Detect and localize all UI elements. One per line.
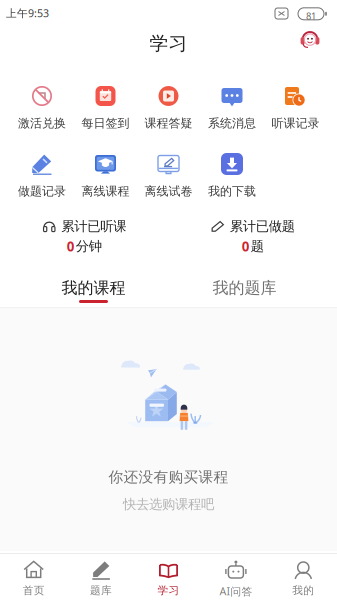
button[interactable]: 离线试卷 (135, 148, 201, 200)
button[interactable]: 课程答疑 (135, 80, 201, 132)
staticText: 离线课程 (81, 184, 129, 199)
button[interactable]: 首页 (0, 555, 67, 600)
button[interactable]: 我的下载 (199, 148, 265, 200)
button[interactable]: 我的题库 (184, 276, 304, 308)
staticText: 系统消息 (208, 116, 256, 131)
button[interactable]: 题库 (67, 555, 135, 600)
staticText: 我的题库 (212, 278, 276, 298)
staticText: 0 (67, 237, 75, 255)
button[interactable]: 离线课程 (72, 148, 138, 200)
staticText: 学习 (157, 584, 179, 597)
staticText: 我的 (292, 584, 314, 597)
staticText: 上午9:53 (6, 6, 49, 20)
staticText: 每日签到 (81, 116, 129, 131)
button[interactable]: 我的 (270, 555, 337, 600)
staticText: 课程答疑 (144, 116, 192, 131)
button[interactable]: 我的课程 (33, 276, 153, 308)
button[interactable]: 系统消息 (199, 80, 265, 132)
staticText: AI问答 (219, 584, 252, 598)
staticText: 0 (242, 237, 250, 255)
button[interactable]: 学习 (135, 555, 202, 600)
staticText: 你还没有购买课程 (108, 468, 228, 486)
staticText: 分钟 (76, 238, 102, 254)
staticText: 我的课程 (61, 278, 125, 298)
button[interactable]: AI问答 (202, 555, 270, 600)
staticText: 做题记录 (18, 184, 66, 199)
button[interactable]: 听课记录 (262, 80, 328, 132)
staticText: 题 (251, 238, 264, 254)
staticText: 快去选购课程吧 (123, 496, 214, 512)
button[interactable]: 激活兑换 (9, 80, 75, 132)
staticText: 累计已做题 (230, 218, 295, 234)
staticText: 首页 (23, 584, 45, 597)
button[interactable]: 做题记录 (9, 148, 75, 200)
staticText: 激活兑换 (18, 116, 66, 131)
staticText: 学习 (149, 32, 187, 55)
staticText: 累计已听课 (61, 218, 126, 234)
staticText: 离线试卷 (144, 184, 192, 199)
button[interactable]: 每日签到 (72, 80, 138, 132)
staticText: 81 (306, 10, 316, 22)
staticText: 题库 (90, 584, 112, 597)
staticText: 听课记录 (271, 116, 319, 131)
staticText: 我的下载 (208, 184, 256, 199)
button[interactable]: 在线客服 (300, 29, 320, 49)
